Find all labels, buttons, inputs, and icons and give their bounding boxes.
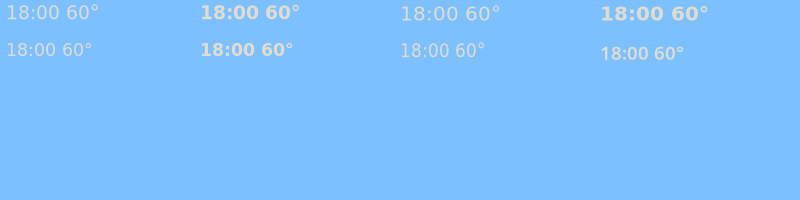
staticText: 18:00 60° xyxy=(400,40,485,62)
staticText: 18:00 60° xyxy=(600,40,684,65)
staticText: 18:00 60° xyxy=(200,2,300,24)
staticText: 18:00 60° xyxy=(600,2,709,25)
staticText: 18:00 60° xyxy=(6,40,93,60)
staticText: 18:00 60° xyxy=(400,2,501,25)
staticText: 18:00 60° xyxy=(200,40,294,60)
staticText: 18:00 60° xyxy=(6,2,99,24)
